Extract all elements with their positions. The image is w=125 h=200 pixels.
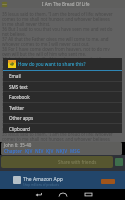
button[interactable]: Install (101, 179, 115, 184)
staticText: The Amazon App (23, 176, 63, 183)
staticText: 38 For I have come down from heaven, not… (2, 106, 110, 111)
staticText: comes to me shall not hunger, and whoeve… (2, 136, 110, 141)
staticText: own will but the will of him who sent me… (2, 51, 87, 56)
staticText: Twitter (9, 105, 25, 111)
button[interactable]: Twitter (3, 103, 122, 113)
button[interactable]: NIV (35, 148, 44, 154)
staticText: Clipboard (9, 126, 30, 132)
staticText: raise it up on the last day. (2, 66, 55, 71)
button[interactable]: Home (55, 189, 71, 200)
staticText: 35 Jesus said to them, “I am the bread o… (2, 11, 113, 16)
staticText: own will but the will of him who sent me… (2, 111, 87, 116)
staticText: John 6: 35-40 (4, 142, 32, 148)
staticText: raise it up on the last day. (2, 126, 55, 131)
staticText: whoever comes to me I will never cast ou… (2, 101, 90, 106)
button[interactable]: Other apps (3, 113, 122, 124)
staticText: should lose nothing of all that he has g… (2, 121, 108, 126)
staticText: 37 All that the Father gives me will com… (2, 36, 109, 41)
staticText: 39 And this is the will of him who sent … (2, 56, 101, 61)
staticText: in me shall never thirst. (2, 21, 51, 26)
staticText: 37 All that the Father gives me will com… (2, 96, 109, 101)
button[interactable]: Chapter (4, 148, 23, 154)
button[interactable]: Ad info (115, 158, 123, 166)
button[interactable]: John 6: 35-40 (1, 142, 122, 155)
staticText: 38 For I have come down from heaven, not… (2, 46, 110, 51)
staticText: I Am The Bread Of Life (42, 1, 90, 7)
staticText: Shop millions of products (23, 183, 59, 187)
button[interactable]: Up (1, 1, 8, 8)
staticText: 35 Jesus said to them, “I am the bread o… (2, 131, 113, 136)
staticText: Share with friends (58, 159, 97, 165)
button[interactable]: Back (30, 189, 46, 200)
button[interactable]: Facebook (3, 92, 122, 103)
staticText: in me shall never thirst. (2, 81, 51, 86)
staticText: SMS text (9, 84, 28, 90)
staticText: 36 But I said to you that you have seen … (2, 26, 113, 31)
button[interactable]: SMS text (3, 82, 122, 92)
staticText: not believe. (2, 91, 26, 96)
button[interactable]: KJV (46, 148, 54, 154)
staticText: Facebook (9, 94, 30, 100)
button[interactable]: Email (3, 71, 122, 82)
staticText: comes to me shall not hunger, and whoeve… (2, 16, 110, 21)
staticText: 36 But I said to you that you have seen … (2, 86, 113, 91)
button[interactable]: The Amazon App (0, 171, 125, 189)
staticText: Email (9, 73, 21, 79)
button[interactable]: Share with friends (1, 156, 113, 168)
staticText: whoever comes to me I will never cast ou… (2, 41, 90, 46)
button[interactable]: KJV (25, 148, 33, 154)
staticText: should lose nothing of all that he has g… (2, 61, 108, 66)
staticText: Other apps (9, 115, 34, 121)
button[interactable]: NKJV (56, 148, 68, 154)
button[interactable]: Clipboard (3, 124, 122, 133)
staticText: not believe. (2, 31, 26, 36)
button[interactable]: MSG (70, 148, 80, 154)
staticText: comes to me shall not hunger, and whoeve… (2, 76, 110, 81)
button[interactable]: Recent apps (80, 189, 96, 200)
staticText: How do you want to share this? (18, 61, 86, 67)
staticText: 39 And this is the will of him who sent … (2, 116, 101, 121)
staticText: 35 Jesus said to them, “I am the bread o… (2, 71, 113, 76)
